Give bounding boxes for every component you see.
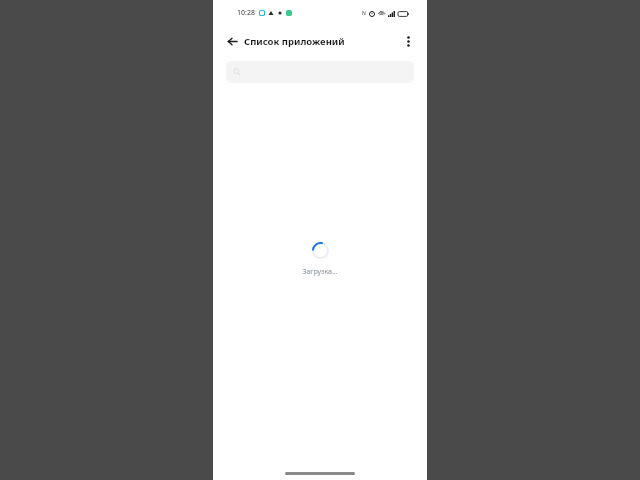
button[interactable]: Назад — [222, 31, 242, 51]
staticText: 10:28 — [237, 8, 255, 18]
staticText: Список приложений — [244, 35, 345, 48]
staticText: N — [362, 10, 366, 17]
button[interactable]: Ещё — [398, 31, 418, 51]
staticText: Загрузка... — [302, 267, 338, 277]
